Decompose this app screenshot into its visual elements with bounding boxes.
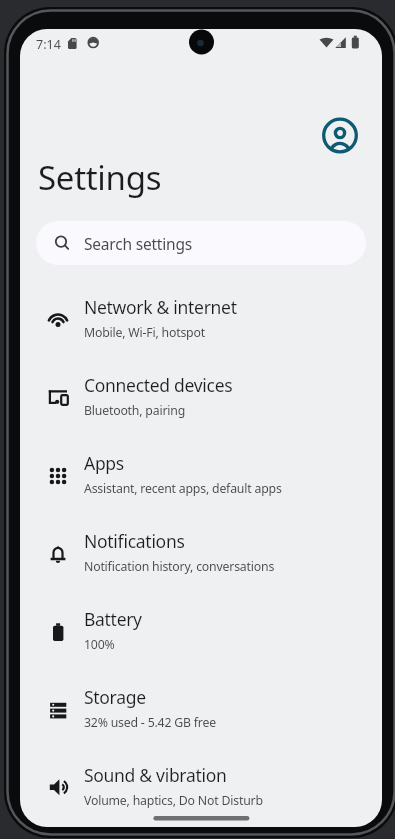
staticText: Apps [84, 451, 124, 475]
button[interactable]: Network & internet [20, 279, 382, 357]
staticText: 32% used - 5.42 GB free [84, 714, 216, 731]
staticText: Mobile, Wi-Fi, hotspot [84, 324, 205, 341]
staticText: Bluetooth, pairing [84, 402, 185, 419]
staticText: Connected devices [84, 373, 233, 397]
staticText: 7:14 [36, 36, 61, 53]
staticText: Sound & vibration [84, 763, 227, 787]
staticText: Notifications [84, 529, 185, 553]
button[interactable]: Notifications [20, 513, 382, 591]
button[interactable]: Connected devices [20, 357, 382, 435]
staticText: Assistant, recent apps, default apps [84, 480, 282, 497]
button[interactable]: Search settings [36, 221, 366, 265]
staticText: Volume, haptics, Do Not Disturb [84, 792, 263, 809]
staticText: Settings [38, 155, 162, 200]
staticText: Battery [84, 607, 142, 631]
staticText: Notification history, conversations [84, 558, 275, 575]
button[interactable] [320, 115, 360, 155]
button[interactable]: Battery [20, 591, 382, 669]
button[interactable]: Apps [20, 435, 382, 513]
staticText: Network & internet [84, 295, 237, 319]
button[interactable]: Storage [20, 669, 382, 747]
staticText: Search settings [84, 233, 192, 254]
staticText: 100% [84, 636, 115, 653]
button[interactable]: Sound & vibration [20, 747, 382, 825]
staticText: Storage [84, 685, 146, 709]
